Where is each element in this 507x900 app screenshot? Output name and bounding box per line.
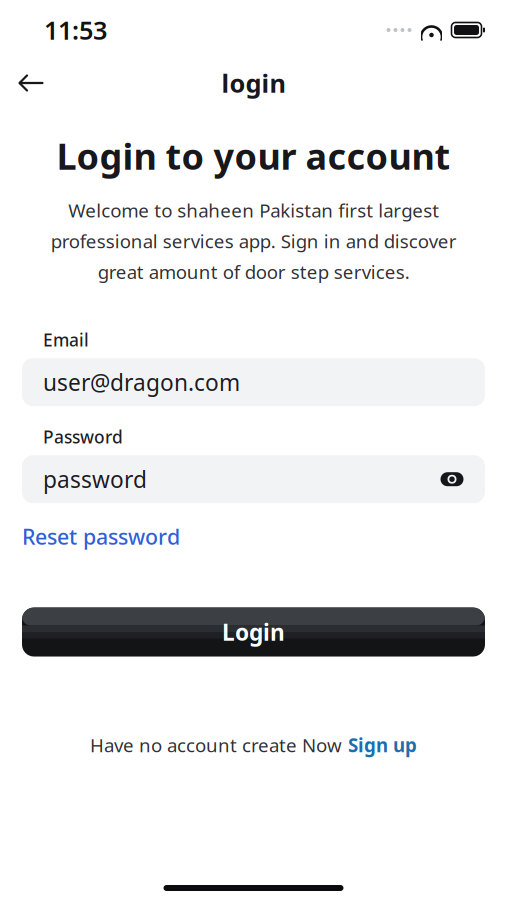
staticText: Welcome to shaheen Pakistan first larges… bbox=[50, 198, 456, 284]
button[interactable]: Login bbox=[22, 607, 485, 656]
button[interactable]: Reset password bbox=[22, 517, 180, 555]
staticText: user@dragon.com bbox=[43, 367, 240, 397]
staticText: Reset password bbox=[22, 522, 180, 550]
staticText: login bbox=[221, 66, 285, 100]
staticText: Password bbox=[43, 425, 123, 448]
staticText: password bbox=[43, 464, 147, 494]
button[interactable]: password bbox=[22, 455, 485, 503]
staticText: 11:53 bbox=[44, 13, 107, 47]
staticText: Login to your account bbox=[56, 132, 450, 180]
staticText: Email bbox=[43, 328, 89, 351]
button[interactable]: Back bbox=[8, 63, 54, 103]
staticText: Sign up bbox=[348, 732, 417, 757]
button[interactable]: Sign up bbox=[348, 732, 417, 757]
button[interactable]: user@dragon.com bbox=[22, 358, 485, 406]
staticText: Have no account create Now bbox=[90, 732, 342, 757]
staticText: Login bbox=[222, 617, 285, 647]
